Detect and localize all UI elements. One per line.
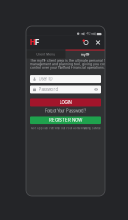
staticText: REGISTER NOW [49,118,82,123]
button[interactable]: Close [94,35,102,49]
button[interactable]: Password [30,85,101,93]
staticText: control over your Hartford Financial ope… [30,65,105,69]
staticText: Password [38,87,58,92]
staticText: Client Menu [36,53,55,56]
button[interactable]: LOGIN [30,98,101,106]
staticText: management and planning tool, giving you… [30,62,115,66]
staticText: F [35,38,39,47]
staticText: ⬢ [77,32,80,35]
button[interactable]: Notifications [82,35,90,49]
button[interactable]: User ID [30,75,101,83]
staticText: LOGIN [59,100,71,105]
staticText: Not Applied Yet? Find Out Your Home Fina… [31,127,100,130]
staticText: H [30,38,35,47]
button[interactable]: Not Applied Yet? Find Out Your Home Fina… [30,126,101,131]
button[interactable]: Client Menu [26,49,65,58]
staticText: 4G [86,32,90,35]
staticText: myHF [81,52,90,56]
button[interactable]: myHF [65,49,105,58]
staticText: User ID [38,76,52,82]
staticText: The myHF client area is the ultimate per… [30,59,116,63]
staticText: Forgot Your Password? [45,108,86,113]
button[interactable]: Forgot Your Password? [30,106,101,115]
button[interactable]: REGISTER NOW [30,116,101,124]
